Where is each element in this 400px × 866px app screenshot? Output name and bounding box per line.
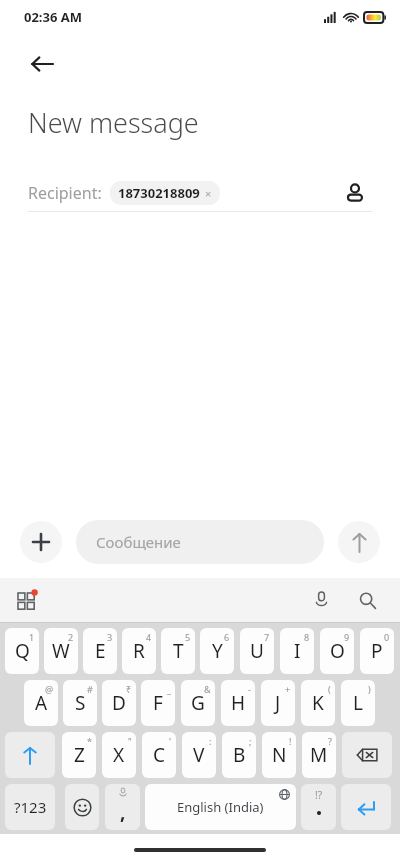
- staticText: ?123: [14, 797, 47, 817]
- button[interactable]: I: [280, 628, 314, 674]
- button[interactable]: 18730218809: [110, 181, 220, 205]
- button[interactable]: J: [261, 680, 295, 726]
- other: Shift: [21, 746, 39, 764]
- staticText: B: [233, 742, 246, 768]
- staticText: 1: [29, 631, 35, 643]
- button[interactable]: Q: [5, 628, 39, 674]
- staticText: !?: [315, 788, 323, 802]
- staticText: K: [312, 690, 324, 716]
- staticText: 2: [68, 631, 74, 643]
- staticText: N: [272, 742, 287, 768]
- staticText: D: [112, 690, 126, 716]
- staticText: W: [52, 638, 70, 664]
- staticText: ,: [120, 799, 126, 825]
- button[interactable]: H: [221, 680, 255, 726]
- staticText: Z: [74, 742, 85, 768]
- button[interactable]: L: [341, 680, 375, 726]
- staticText: 02:36 AM: [24, 8, 83, 26]
- staticText: F: [153, 690, 163, 716]
- staticText: +: [285, 683, 291, 695]
- button[interactable]: P: [360, 628, 394, 674]
- staticText: M: [310, 742, 328, 768]
- button[interactable]: X: [102, 732, 136, 778]
- button[interactable]: K: [301, 680, 335, 726]
- staticText: 5: [185, 631, 191, 643]
- button[interactable]: O: [320, 628, 354, 674]
- button[interactable]: Apps: [12, 585, 42, 615]
- button[interactable]: Сообщение: [76, 520, 324, 564]
- staticText: G: [191, 690, 205, 716]
- button[interactable]: Z: [62, 732, 96, 778]
- button[interactable]: Shift: [5, 732, 55, 778]
- staticText: 8: [304, 631, 310, 643]
- staticText: English (India): [177, 798, 264, 816]
- button[interactable]: Backspace: [342, 732, 392, 778]
- staticText: ": [128, 735, 132, 747]
- staticText: ×: [205, 186, 212, 201]
- button[interactable]: Send: [338, 521, 380, 563]
- staticText: R: [133, 638, 145, 664]
- staticText: S: [75, 690, 86, 716]
- button[interactable]: V: [182, 732, 216, 778]
- staticText: I: [294, 638, 301, 664]
- other: Emoji: [73, 798, 92, 817]
- button[interactable]: ,: [105, 784, 140, 830]
- staticText: ?: [328, 735, 332, 747]
- button[interactable]: Emoji: [65, 784, 99, 830]
- staticText: T: [173, 638, 184, 664]
- button[interactable]: ?123: [5, 784, 55, 830]
- button[interactable]: Search: [352, 585, 382, 615]
- staticText: 7: [264, 631, 270, 643]
- staticText: Q: [15, 638, 30, 664]
- button[interactable]: English (India): [145, 784, 296, 830]
- button[interactable]: M: [302, 732, 336, 778]
- button[interactable]: D: [102, 680, 136, 726]
- staticText: E: [95, 638, 106, 664]
- staticText: P: [371, 638, 383, 664]
- staticText: ;: [249, 735, 252, 747]
- button[interactable]: G: [181, 680, 215, 726]
- staticText: L: [353, 690, 363, 716]
- button[interactable]: Voice input: [306, 585, 336, 615]
- staticText: 0: [384, 631, 390, 643]
- button[interactable]: Choose contact: [338, 176, 372, 210]
- staticText: ₹: [126, 683, 132, 695]
- staticText: 9: [344, 631, 350, 643]
- button[interactable]: Y: [200, 628, 234, 674]
- staticText: Y: [212, 638, 223, 664]
- staticText: J: [275, 690, 281, 716]
- staticText: #: [87, 683, 93, 695]
- button[interactable]: A: [24, 680, 58, 726]
- staticText: Recipient:: [28, 182, 102, 204]
- staticText: 3: [107, 631, 113, 643]
- button[interactable]: E: [83, 628, 117, 674]
- button[interactable]: Enter: [341, 784, 391, 830]
- button[interactable]: U: [240, 628, 274, 674]
- button[interactable]: S: [63, 680, 97, 726]
- staticText: X: [113, 742, 125, 768]
- button[interactable]: !?: [301, 784, 336, 830]
- other: Enter: [356, 797, 376, 817]
- button[interactable]: R: [122, 628, 156, 674]
- staticText: 4: [146, 631, 152, 643]
- staticText: Сообщение: [96, 532, 181, 552]
- button[interactable]: W: [44, 628, 78, 674]
- staticText: New message: [28, 104, 199, 141]
- staticText: 6: [224, 631, 230, 643]
- button[interactable]: Add attachment: [20, 521, 62, 563]
- button[interactable]: B: [222, 732, 256, 778]
- button[interactable]: Back: [22, 44, 62, 84]
- button[interactable]: F: [141, 680, 175, 726]
- staticText: *: [87, 735, 92, 747]
- staticText: A: [35, 690, 48, 716]
- staticText: U: [250, 638, 264, 664]
- staticText: !: [289, 735, 292, 747]
- staticText: V: [193, 742, 205, 768]
- button[interactable]: N: [262, 732, 296, 778]
- button[interactable]: T: [161, 628, 195, 674]
- staticText: @: [45, 683, 54, 695]
- button[interactable]: C: [142, 732, 176, 778]
- staticText: ): [368, 683, 371, 695]
- staticText: -: [248, 683, 251, 695]
- other: Backspace: [356, 744, 378, 766]
